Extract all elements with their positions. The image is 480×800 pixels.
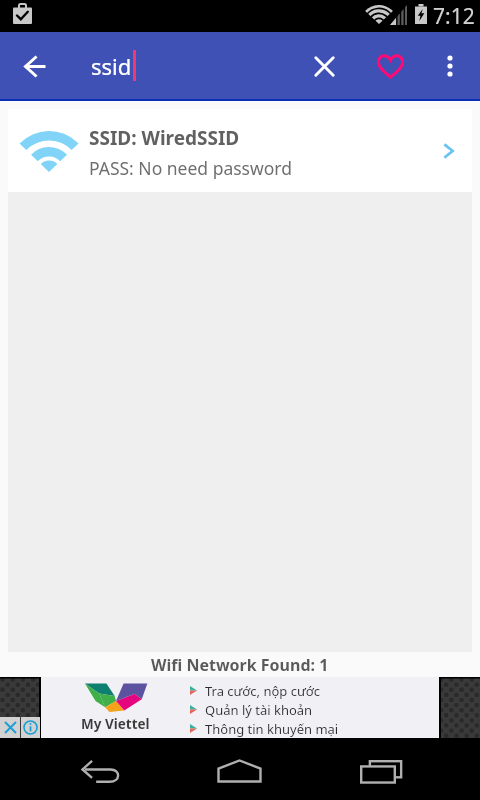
button[interactable]: SSID: WiredSSID bbox=[8, 109, 472, 192]
staticText: PASS: No need password bbox=[89, 156, 292, 180]
button[interactable]: More options bbox=[426, 42, 474, 90]
button[interactable]: Clear bbox=[300, 42, 348, 90]
staticText: 7:12 bbox=[433, 2, 475, 31]
button[interactable]: Close ad bbox=[0, 717, 20, 738]
button[interactable]: Back bbox=[0, 33, 70, 99]
button[interactable]: Recents bbox=[351, 743, 411, 799]
staticText: ssid bbox=[91, 51, 132, 81]
button[interactable]: Home bbox=[209, 743, 269, 799]
staticText: Wifi Network Found: 1 bbox=[151, 654, 329, 676]
staticText: Tra cước, nộp cước bbox=[205, 682, 320, 700]
staticText: My Viettel bbox=[81, 715, 150, 733]
button[interactable]: Open network details bbox=[428, 131, 468, 171]
button[interactable]: Ad info bbox=[21, 717, 40, 738]
button[interactable]: Favorite bbox=[366, 42, 414, 90]
button[interactable]: Back bbox=[71, 743, 131, 799]
button[interactable]: My Viettel bbox=[41, 677, 439, 738]
staticText: Thông tin khuyến mại bbox=[205, 720, 339, 738]
staticText: SSID: WiredSSID bbox=[89, 125, 240, 151]
staticText: Quản lý tài khoản bbox=[205, 701, 313, 719]
